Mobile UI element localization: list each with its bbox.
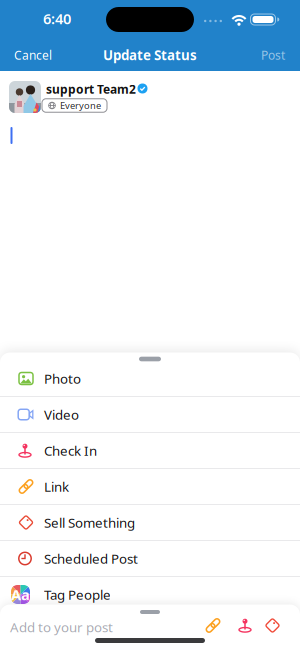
button[interactable]: Add link [205,617,221,633]
button[interactable]: Check In [0,433,300,468]
staticText: 6:40 [43,9,71,28]
staticText: Aa [11,585,30,604]
button[interactable]: Add to your post [0,612,190,642]
staticText: Everyone [60,99,101,112]
staticText: Update Status [103,46,197,64]
staticText: Post [261,47,285,63]
staticText: Scheduled Post [44,550,138,567]
button[interactable]: Aa [0,577,300,612]
staticText: Link [44,478,69,495]
button[interactable]: Check in [238,617,254,633]
button[interactable]: Photo [0,361,300,396]
button[interactable]: Scheduled Post [0,541,300,576]
staticText: support Team2 [46,81,136,97]
button[interactable]: Sell Something [0,505,300,540]
staticText: Cancel [14,47,52,63]
staticText: Check In [44,442,97,459]
staticText: Photo [44,370,81,387]
button[interactable]: Everyone [42,99,107,112]
button[interactable]: Post [251,40,295,70]
staticText: Sell Something [44,514,135,531]
button[interactable]: Cancel [3,40,63,70]
staticText: Tag People [44,586,111,603]
staticText: Add to your post [10,618,113,636]
button[interactable]: Sell something [264,617,280,633]
button[interactable]: Link [0,469,300,504]
staticText: Video [44,406,79,423]
button[interactable]: Video [0,397,300,432]
